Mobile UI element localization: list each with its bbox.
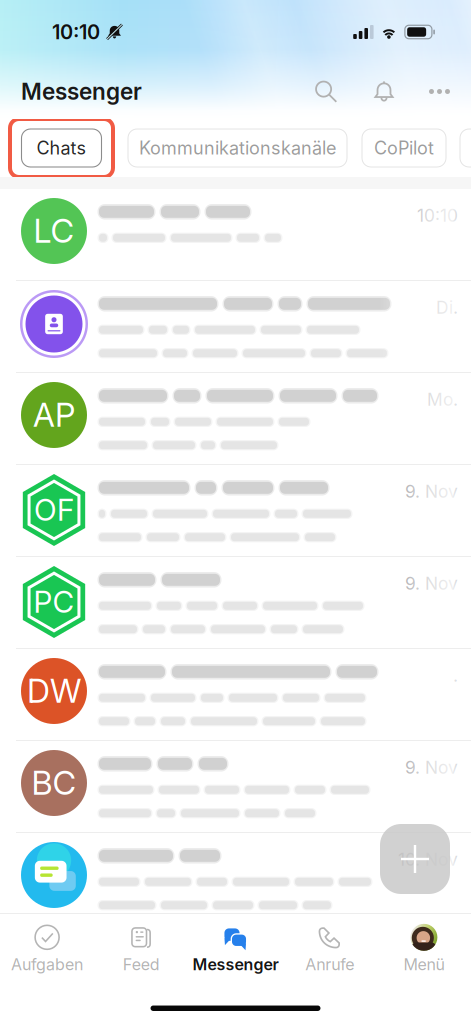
staticText: Messenger [192, 955, 278, 974]
staticText: DW [27, 671, 81, 711]
staticText: 10. Nov [398, 849, 458, 870]
button[interactable]: Notifications [372, 79, 396, 103]
staticText: 9. Nov [405, 481, 458, 502]
staticText: PC [33, 584, 74, 620]
staticText: Messenger [21, 78, 142, 105]
staticText: Aufgaben [11, 955, 83, 974]
staticText: BC [31, 763, 76, 803]
button[interactable]: BC [0, 741, 471, 832]
button[interactable]: Aufgaben [0, 914, 94, 982]
button[interactable]: Menü [377, 914, 471, 982]
button[interactable]: Di. [0, 281, 471, 372]
button[interactable]: DW [0, 649, 471, 740]
button[interactable]: Chats [21, 129, 101, 167]
button[interactable]: More options [426, 79, 453, 103]
button[interactable]: PC [0, 557, 471, 648]
button[interactable]: LC [0, 189, 471, 280]
button[interactable]: CoPilot [362, 129, 446, 167]
button[interactable]: 10. Nov [0, 833, 471, 924]
staticText: AP [33, 395, 75, 435]
staticText: Kommunikationskanäle [139, 137, 336, 159]
staticText: 9. Nov [405, 573, 458, 594]
staticText: Mo. [427, 389, 458, 410]
button[interactable]: OF [0, 465, 471, 556]
staticText: Chats [36, 137, 86, 159]
button[interactable]: AP [0, 373, 471, 464]
staticText: 9. Nov [405, 757, 458, 778]
staticText: Di. [436, 297, 458, 318]
staticText: Menü [403, 955, 444, 974]
button[interactable]: Messenger [188, 914, 283, 982]
staticText: Anrufe [305, 955, 354, 974]
staticText: Feed [123, 955, 160, 974]
staticText: LC [33, 211, 74, 251]
staticText: CoPilot [374, 137, 434, 159]
button[interactable]: Kommunikationskanäle [128, 129, 347, 167]
staticText: OF [34, 492, 74, 528]
button[interactable]: Anrufe [283, 914, 377, 982]
button[interactable]: Feed [94, 914, 188, 982]
staticText: . [453, 665, 458, 686]
staticText: 10:10 [417, 205, 458, 226]
button[interactable]: Search [314, 79, 338, 103]
staticText: 10:10 [52, 20, 100, 44]
button[interactable]: New chat [380, 824, 450, 894]
button[interactable]: Ab [460, 129, 471, 167]
